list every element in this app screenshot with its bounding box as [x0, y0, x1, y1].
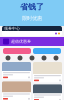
button[interactable]	[33, 62, 62, 82]
button[interactable]	[2, 62, 31, 79]
button[interactable]: Store	[14, 55, 26, 60]
staticText: 限时优惠	[22, 15, 42, 21]
button[interactable]	[3, 48, 31, 54]
button[interactable]	[33, 48, 61, 54]
button[interactable]	[2, 81, 31, 100]
button[interactable]: Store	[50, 55, 62, 60]
button[interactable]: Store	[38, 55, 50, 60]
staticText: 领券中心	[4, 26, 20, 31]
button[interactable]	[33, 84, 62, 100]
button[interactable]: Store	[26, 55, 38, 60]
staticText: 超值优惠券	[11, 39, 31, 44]
staticText: 省钱了	[20, 2, 44, 12]
button[interactable]: Store	[2, 55, 14, 60]
